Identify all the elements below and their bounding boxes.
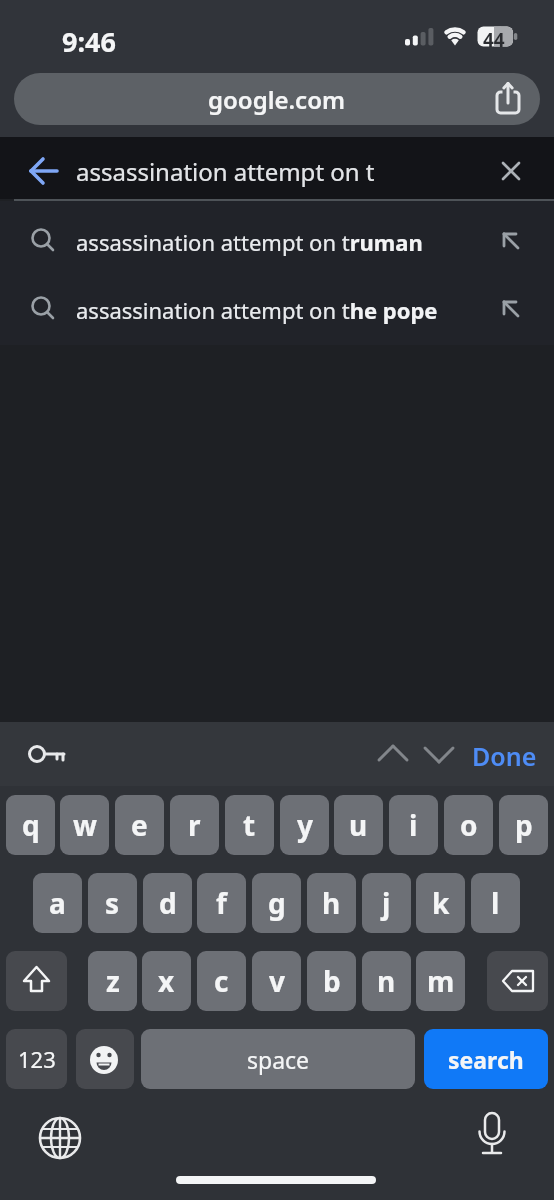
staticText: g: [268, 884, 286, 922]
staticText: assassination attempt on t: [76, 155, 375, 188]
staticText: e: [131, 806, 148, 844]
staticText: k: [432, 884, 450, 922]
staticText: a: [49, 884, 66, 922]
staticText: t: [243, 806, 256, 844]
staticText: p: [515, 806, 533, 844]
staticText: c: [214, 962, 229, 1000]
staticText: v: [269, 962, 285, 1000]
staticText: y: [297, 806, 313, 844]
staticText: f: [216, 884, 227, 922]
staticText: l: [491, 884, 500, 922]
staticText: 44: [483, 27, 505, 53]
staticText: u: [349, 806, 368, 844]
staticText: d: [159, 884, 177, 922]
staticText: assassination attempt on truman: [76, 227, 423, 257]
staticText: n: [377, 962, 396, 1000]
staticText: s: [105, 884, 120, 922]
staticText: b: [323, 962, 341, 1000]
staticText: w: [73, 806, 97, 844]
staticText: z: [106, 962, 120, 1000]
staticText: Done: [472, 739, 537, 773]
staticText: o: [460, 806, 478, 844]
staticText: h: [322, 884, 341, 922]
staticText: google.com: [208, 83, 346, 116]
staticText: space: [247, 1044, 310, 1075]
staticText: search: [448, 1044, 524, 1075]
staticText: 123: [18, 1044, 56, 1074]
staticText: j: [382, 884, 391, 922]
staticText: assassination attempt on the pope: [76, 295, 438, 325]
staticText: m: [427, 962, 455, 1000]
staticText: 9:46: [62, 23, 116, 60]
staticText: x: [158, 962, 175, 1000]
staticText: i: [409, 806, 418, 844]
staticText: r: [188, 806, 201, 844]
staticText: q: [22, 806, 40, 844]
